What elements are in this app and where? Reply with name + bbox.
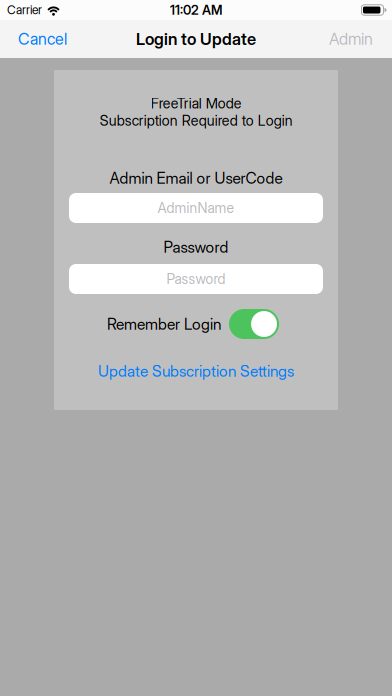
staticText: FreeTrial Mode Subscription Required to … (99, 95, 292, 129)
button[interactable]: Update Subscription Settings (98, 362, 294, 380)
staticText: Password (166, 270, 225, 287)
button[interactable]: AdminName (69, 193, 323, 223)
staticText: AdminName (157, 199, 234, 216)
staticText: Admin (329, 29, 373, 49)
button[interactable]: Remember Login (229, 309, 279, 339)
button[interactable]: Cancel (18, 29, 67, 49)
staticText: Login to Update (136, 29, 256, 49)
staticText: Update Subscription Settings (98, 362, 294, 380)
staticText: Admin Email or UserCode (109, 169, 282, 187)
staticText: 11:02 AM (170, 2, 222, 18)
staticText: Remember Login (107, 315, 221, 333)
staticText: Carrier (7, 3, 42, 17)
staticText: Password (163, 238, 228, 256)
button[interactable]: Admin (329, 29, 373, 49)
staticText: Cancel (18, 29, 67, 49)
button[interactable]: Password (69, 264, 323, 294)
